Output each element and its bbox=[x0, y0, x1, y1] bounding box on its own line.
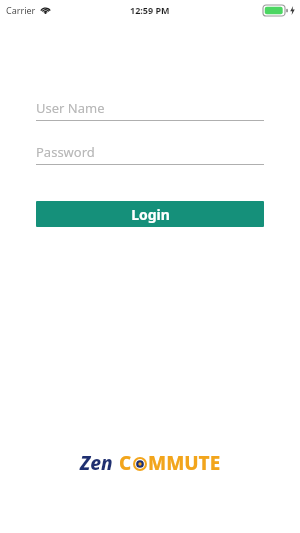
staticText: Password bbox=[36, 143, 95, 161]
staticText: Carrier bbox=[6, 4, 36, 16]
button[interactable]: Zen bbox=[80, 450, 221, 476]
staticText: Zen bbox=[80, 450, 113, 476]
button[interactable]: Login bbox=[36, 201, 264, 227]
button[interactable]: Password bbox=[36, 140, 264, 165]
button[interactable]: User Name bbox=[36, 96, 264, 121]
staticText: 12:59 PM bbox=[130, 4, 170, 16]
staticText: User Name bbox=[36, 99, 105, 117]
staticText: MMUTE bbox=[148, 450, 221, 476]
staticText: C bbox=[119, 450, 132, 476]
staticText: Login bbox=[131, 205, 170, 224]
